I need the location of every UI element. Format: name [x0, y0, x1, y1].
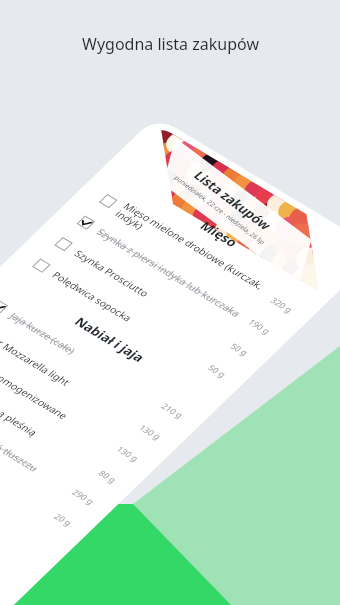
staticText: Polędwica sopocka	[48, 253, 210, 384]
staticText: 210 g	[157, 399, 187, 423]
staticText: Jogurt naturalny 2% tłuszczu	[0, 380, 74, 508]
staticText: 190 g	[244, 315, 274, 339]
staticText: Ser z niebieską pleśnią	[0, 358, 101, 490]
staticText: Nabiał i jaja	[69, 307, 151, 373]
staticText: Jaja kurze (całe)	[6, 294, 163, 422]
staticText: 290 g	[68, 485, 98, 509]
staticText: Lista zakupów	[181, 158, 285, 243]
staticText: 50 g	[226, 339, 252, 360]
staticText: Ser Mozzarella light	[0, 316, 141, 444]
staticText: 50 g	[204, 361, 230, 382]
staticText: Mleko homogenizowane	[0, 337, 119, 465]
staticText: Wygodna lista zakupów	[82, 33, 259, 55]
staticText: 20 g	[50, 510, 76, 530]
staticText: 320 g	[267, 293, 297, 318]
staticText: 130 g	[135, 420, 165, 445]
staticText: 80 g	[95, 466, 120, 487]
staticText: 130 g	[113, 442, 143, 466]
staticText: Szynka z piersi indyka lub kurczaka	[93, 210, 250, 338]
staticText: Serek śmietankowy	[0, 401, 56, 533]
staticText: Szynka Prosciutto	[70, 231, 232, 363]
staticText: Mięso mielone drobiowe (kurczak, indyk)	[111, 184, 278, 320]
staticText: Mięso	[195, 214, 244, 254]
staticText: poniedziałek, 22 cze - niedziela, 26 lip	[162, 163, 278, 257]
